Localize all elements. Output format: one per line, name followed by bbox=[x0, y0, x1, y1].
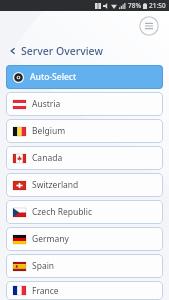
button[interactable]: Auto-Select bbox=[6, 65, 163, 89]
staticText: 21:50 bbox=[149, 1, 166, 10]
button[interactable]: France bbox=[6, 281, 163, 300]
button[interactable]: Spain bbox=[6, 254, 163, 278]
staticText: Belgium bbox=[32, 125, 66, 137]
button[interactable]: Menu bbox=[138, 15, 160, 37]
staticText: France bbox=[32, 285, 59, 297]
staticText: Auto-Select bbox=[30, 71, 77, 83]
button[interactable]: Czech Republic bbox=[6, 200, 163, 224]
staticText: Spain bbox=[32, 260, 55, 272]
staticText: Austria bbox=[32, 98, 61, 110]
button[interactable]: Belgium bbox=[6, 119, 163, 143]
button[interactable]: Austria bbox=[6, 92, 163, 116]
staticText: Czech Republic bbox=[32, 206, 92, 218]
staticText: 78% bbox=[128, 1, 141, 10]
staticText: Switzerland bbox=[32, 179, 79, 191]
button[interactable]: Switzerland bbox=[6, 173, 163, 197]
button[interactable]: Canada bbox=[6, 146, 163, 170]
staticText: Germany bbox=[32, 233, 69, 245]
staticText: Server Overview bbox=[21, 44, 103, 58]
button[interactable]: Server Overview bbox=[0, 41, 169, 61]
staticText: Canada bbox=[32, 152, 63, 164]
button[interactable]: Germany bbox=[6, 227, 163, 251]
